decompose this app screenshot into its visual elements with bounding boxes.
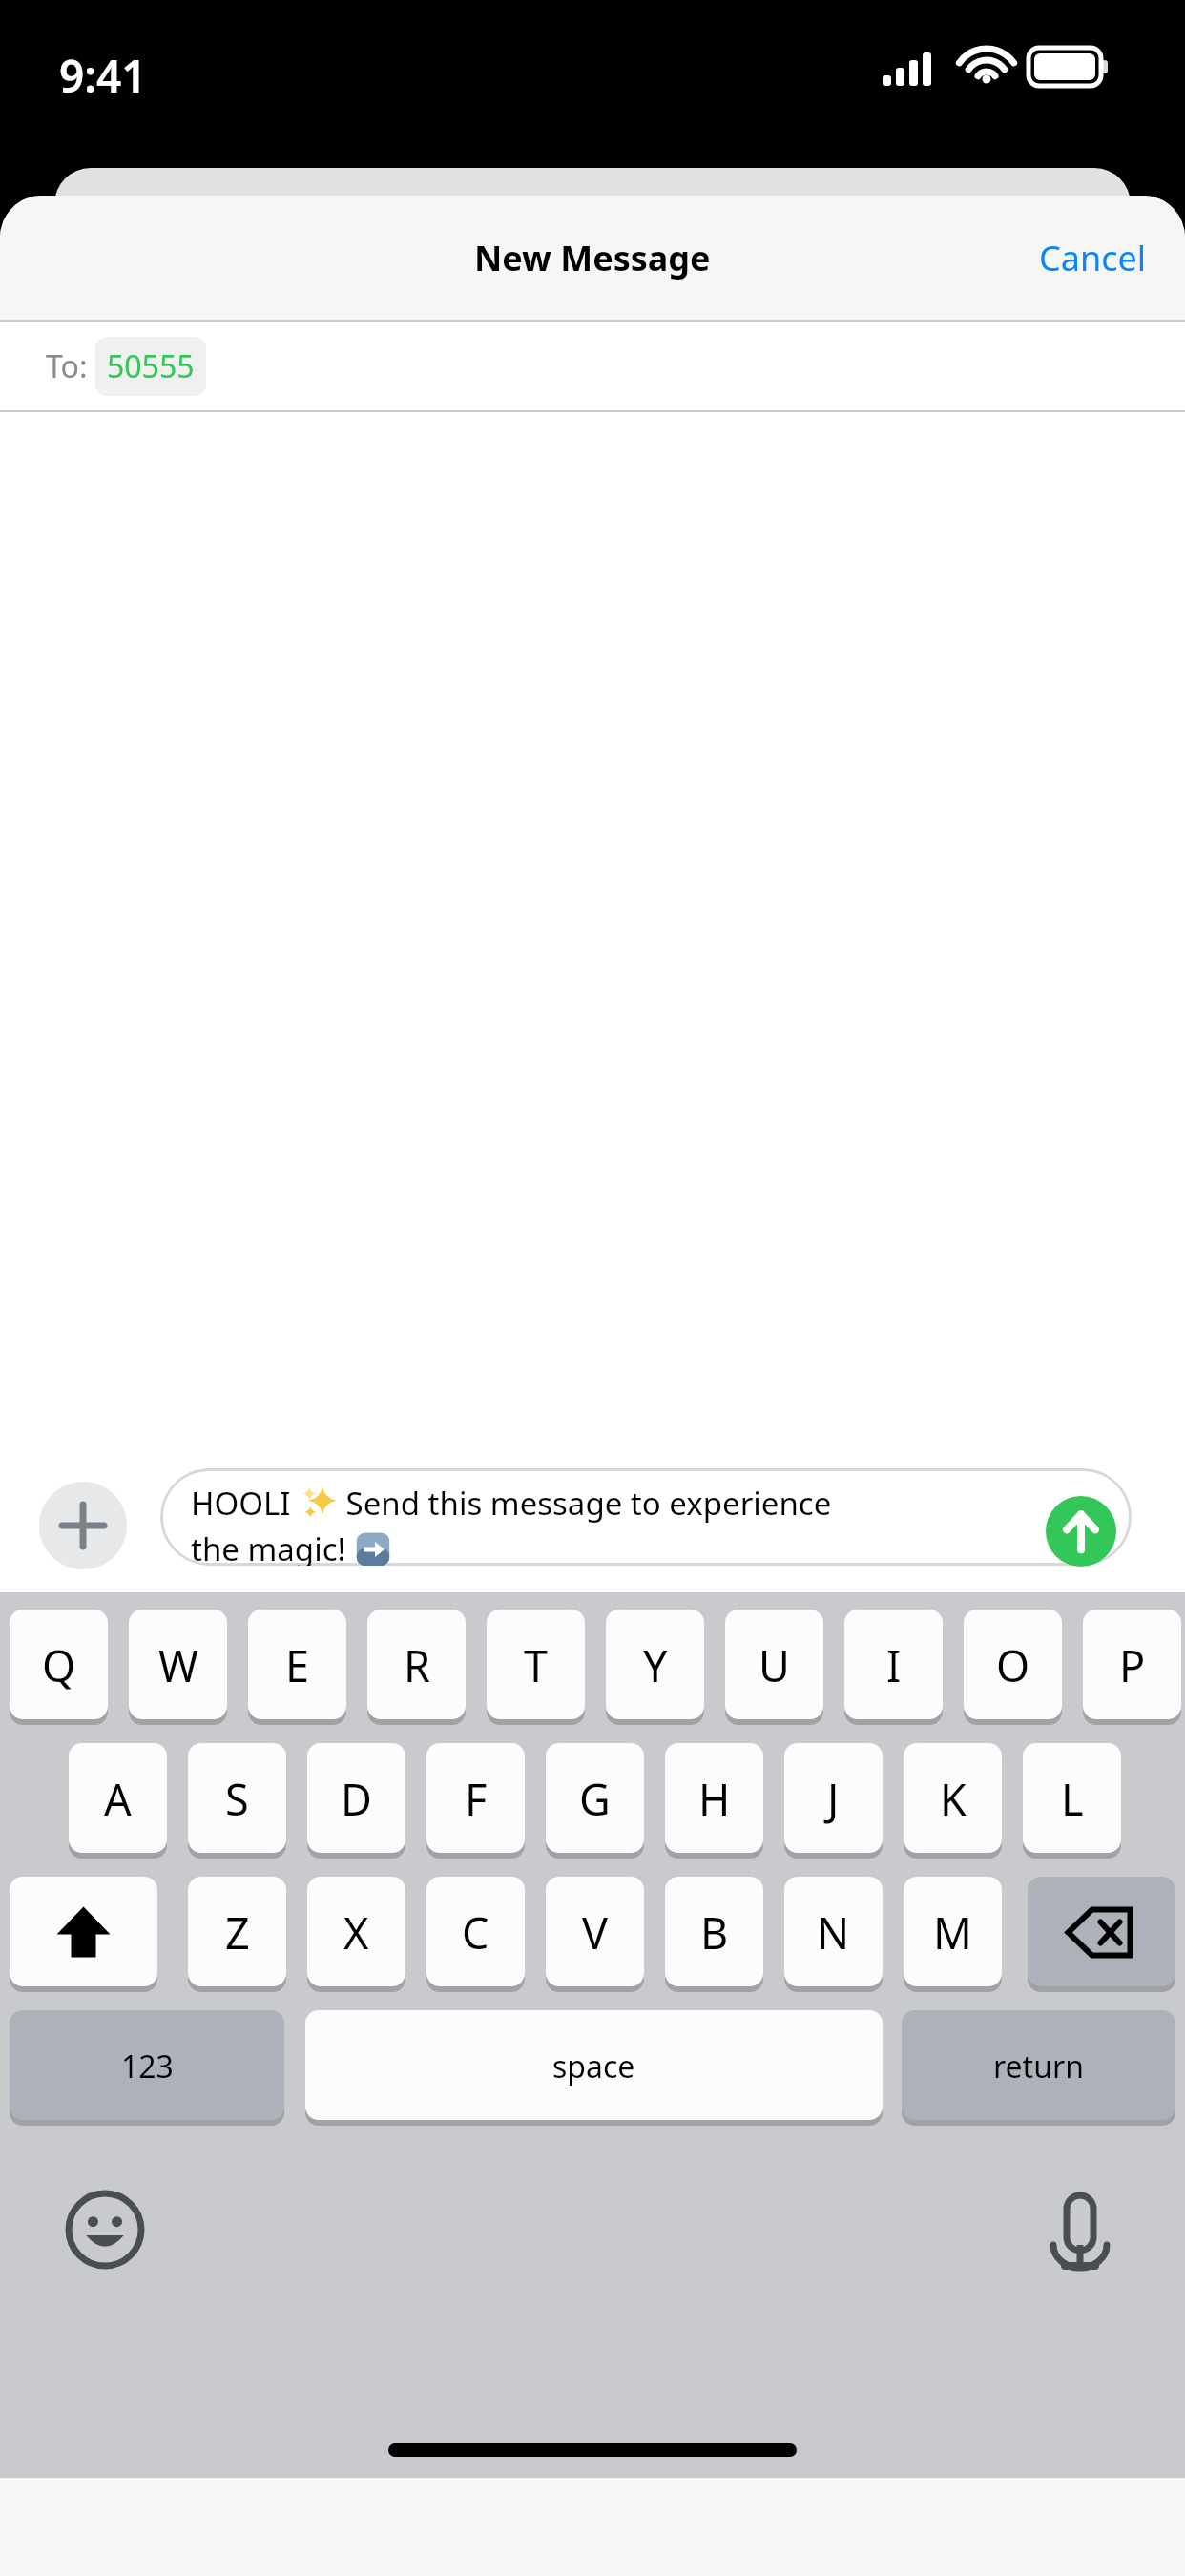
button[interactable]: To: — [46, 337, 206, 396]
staticText: 50555 — [107, 345, 195, 387]
button[interactable]: T — [487, 1610, 585, 1721]
button[interactable]: I — [844, 1610, 943, 1721]
staticText: the magic! — [191, 1527, 354, 1566]
staticText: HOOLI — [191, 1482, 300, 1525]
button[interactable]: F — [426, 1743, 525, 1855]
button[interactable]: H — [665, 1743, 763, 1855]
button[interactable]: G — [546, 1743, 644, 1855]
staticText: Send this message to experience — [338, 1482, 832, 1525]
staticText: space — [552, 2046, 635, 2088]
button[interactable]: Dictation — [1032, 2182, 1128, 2277]
button[interactable]: V — [546, 1877, 644, 1988]
staticText: S — [225, 1770, 249, 1828]
button[interactable]: Emoji keyboard — [57, 2182, 153, 2277]
staticText: T — [524, 1636, 549, 1694]
button[interactable]: B — [665, 1877, 763, 1988]
staticText: F — [465, 1770, 488, 1828]
staticText: X — [343, 1903, 369, 1962]
staticText: A — [104, 1770, 132, 1828]
staticText: Y — [643, 1636, 668, 1694]
button[interactable]: Y — [606, 1610, 704, 1721]
button[interactable]: L — [1023, 1743, 1121, 1855]
button[interactable]: Z — [188, 1877, 286, 1988]
staticText: G — [579, 1770, 611, 1828]
staticText: To: — [46, 345, 88, 387]
button[interactable]: HOOLI — [160, 1468, 1132, 1566]
button[interactable]: U — [725, 1610, 823, 1721]
button[interactable]: K — [904, 1743, 1002, 1855]
button[interactable]: O — [964, 1610, 1062, 1721]
staticText: W — [158, 1636, 198, 1694]
button[interactable]: P — [1083, 1610, 1181, 1721]
staticText: L — [1061, 1770, 1084, 1828]
button[interactable]: Q — [10, 1610, 108, 1721]
staticText: 123 — [121, 2046, 174, 2088]
staticText: E — [285, 1636, 310, 1694]
button[interactable]: space — [305, 2010, 883, 2122]
staticText: B — [700, 1903, 729, 1962]
button[interactable]: J — [784, 1743, 883, 1855]
button[interactable]: M — [904, 1877, 1002, 1988]
staticText: V — [582, 1903, 609, 1962]
staticText: H — [698, 1770, 731, 1828]
staticText: return — [993, 2046, 1084, 2088]
staticText: Cancel — [1039, 235, 1147, 281]
button[interactable]: S — [188, 1743, 286, 1855]
staticText: R — [404, 1636, 430, 1694]
staticText: M — [933, 1903, 972, 1962]
staticText: N — [817, 1903, 850, 1962]
staticText: J — [827, 1770, 840, 1828]
staticText: K — [940, 1770, 967, 1828]
staticText: I — [886, 1636, 902, 1694]
button[interactable]: return — [902, 2010, 1175, 2122]
staticText: Q — [42, 1636, 76, 1694]
button[interactable]: W — [129, 1610, 227, 1721]
button[interactable]: E — [248, 1610, 346, 1721]
button[interactable]: R — [367, 1610, 466, 1721]
staticText: U — [759, 1636, 790, 1694]
staticText: Z — [225, 1903, 250, 1962]
button[interactable]: Cancel — [1001, 214, 1185, 302]
staticText: P — [1119, 1636, 1146, 1694]
button[interactable]: Add attachment — [39, 1482, 127, 1569]
button[interactable]: C — [426, 1877, 525, 1988]
staticText: O — [996, 1636, 1030, 1694]
button[interactable]: Backspace — [1028, 1877, 1175, 1988]
button[interactable]: Send — [1046, 1496, 1116, 1567]
button[interactable]: A — [69, 1743, 167, 1855]
staticText: New Message — [474, 235, 711, 281]
button[interactable]: D — [307, 1743, 405, 1855]
button[interactable]: Shift — [10, 1877, 157, 1988]
button[interactable]: N — [784, 1877, 883, 1988]
staticText: D — [341, 1770, 372, 1828]
button[interactable]: X — [307, 1877, 405, 1988]
staticText: 9:41 — [59, 46, 147, 106]
staticText: C — [462, 1903, 489, 1962]
button[interactable]: 123 — [10, 2010, 284, 2122]
